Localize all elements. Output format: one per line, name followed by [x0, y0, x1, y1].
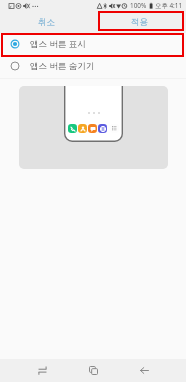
button[interactable]: 취소 — [0, 11, 93, 33]
staticText: 앱스 버튼 표시 — [30, 38, 87, 50]
button[interactable]: 적용 — [93, 11, 186, 33]
button[interactable]: Home — [68, 359, 119, 382]
staticText: 적용 — [131, 17, 149, 28]
staticText: 100% — [130, 1, 147, 10]
staticText: 앱스 버튼 숨기기 — [30, 60, 95, 72]
button[interactable]: Recent apps — [16, 359, 68, 382]
button[interactable]: Back — [119, 359, 170, 382]
staticText: 오후 4:11 — [155, 1, 183, 10]
button[interactable]: 앱스 버튼 표시 — [0, 33, 186, 55]
button[interactable]: 앱스 버튼 숨기기 — [0, 55, 186, 77]
staticText: 취소 — [38, 17, 56, 28]
